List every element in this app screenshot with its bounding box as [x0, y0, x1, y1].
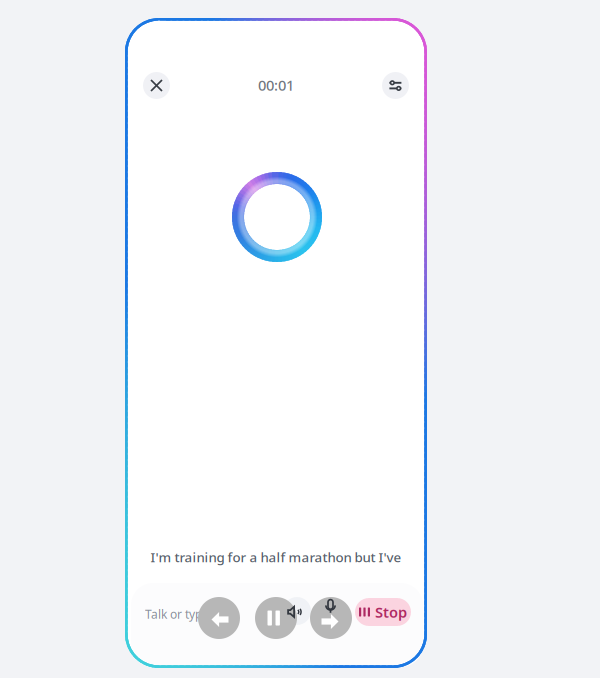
button[interactable]: Skip forward — [310, 597, 352, 639]
button[interactable]: Pause — [255, 597, 297, 639]
button[interactable]: Talk or type... — [139, 593, 309, 635]
staticText: Talk or type... — [145, 606, 218, 622]
staticText: Stop — [375, 602, 407, 622]
button[interactable]: Skip back — [198, 597, 240, 639]
button[interactable]: Audio settings — [382, 72, 409, 99]
staticText: 00:01 — [258, 75, 294, 95]
staticText: I'm training for a half marathon but I'v… — [150, 548, 401, 566]
button[interactable]: Stop — [355, 598, 411, 626]
button[interactable]: Close — [143, 72, 170, 99]
